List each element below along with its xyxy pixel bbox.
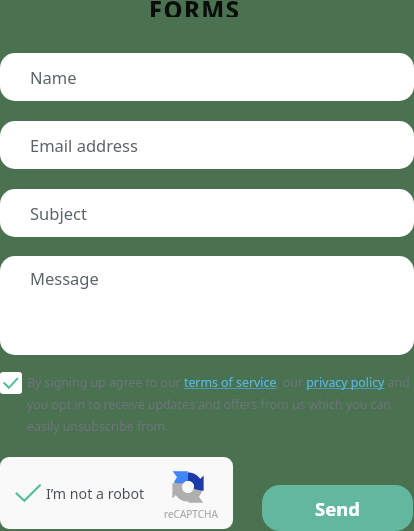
button[interactable]: Send [262,485,413,531]
button[interactable]: Email address [0,121,414,169]
staticText: FORMS [149,0,241,17]
staticText: Email address [30,134,138,156]
button[interactable]: I’m not a robot [0,457,233,529]
button[interactable]: Agree to terms checkbox [0,372,22,394]
staticText: Subject [30,202,87,224]
staticText: By signing up agree to our terms of serv… [27,374,414,435]
button[interactable]: Message [0,256,414,355]
staticText: Send [315,496,360,521]
button[interactable]: Subject [0,189,414,237]
staticText: I’m not a robot [46,484,145,503]
staticText: Name [30,66,77,88]
button[interactable]: Name [0,53,414,101]
staticText: reCAPTCHA [164,507,218,521]
staticText: Message [30,267,99,289]
